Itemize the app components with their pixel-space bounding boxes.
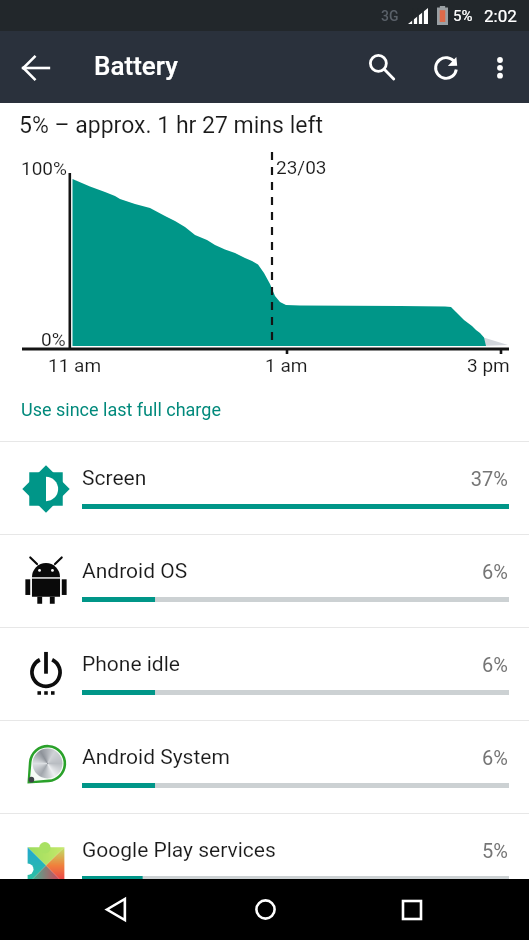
button[interactable]: Android OS — [0, 535, 529, 627]
staticText: 1 am — [265, 354, 308, 376]
staticText: Battery — [94, 51, 178, 81]
button[interactable]: Navigate up — [22, 54, 50, 82]
button[interactable]: Refresh — [431, 53, 461, 83]
staticText: 5% – approx. 1 hr 27 mins left — [19, 112, 323, 139]
button[interactable]: Use since last full charge — [21, 399, 221, 420]
staticText: 11 am — [48, 354, 102, 376]
button[interactable]: More options — [490, 53, 510, 81]
button[interactable]: Phone idle — [0, 628, 529, 720]
staticText: 5% — [0, 839, 508, 862]
staticText: 37% — [0, 467, 508, 490]
staticText: 23/03 — [276, 156, 327, 178]
staticText: 6% — [0, 560, 508, 583]
button[interactable]: Home — [234, 879, 296, 940]
staticText: 3G — [381, 8, 399, 24]
button[interactable]: Android System — [0, 721, 529, 813]
button[interactable]: Back — [86, 879, 148, 940]
button[interactable]: Recent apps — [381, 879, 443, 940]
staticText: 6% — [0, 653, 508, 676]
button[interactable]: Screen — [0, 442, 529, 534]
staticText: 100% — [21, 157, 67, 179]
staticText: 0% — [41, 328, 66, 350]
staticText: 5% — [453, 7, 473, 25]
staticText: Android OS — [82, 559, 188, 584]
button[interactable]: Search — [368, 53, 396, 81]
staticText: Phone idle — [82, 652, 180, 677]
staticText: 3 pm — [467, 354, 510, 376]
staticText: Screen — [82, 466, 147, 491]
staticText: Android System — [82, 745, 230, 770]
staticText: 2:02 — [484, 6, 517, 26]
staticText: Google Play services — [82, 838, 276, 863]
staticText: 6% — [0, 746, 508, 769]
button[interactable]: Google Play services — [0, 814, 529, 906]
